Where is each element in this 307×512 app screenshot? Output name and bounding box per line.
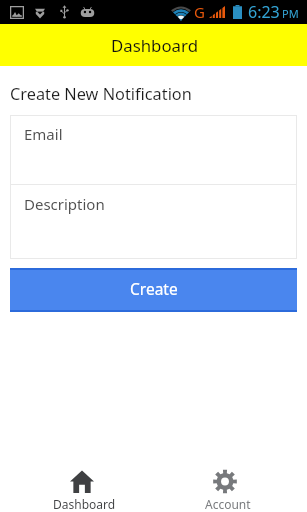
staticText: 6:23: [248, 1, 280, 23]
button[interactable]: Account: [156, 459, 300, 512]
button[interactable]: Dashboard: [13, 459, 156, 512]
button[interactable]: Description: [10, 185, 297, 259]
staticText: G: [194, 2, 205, 22]
staticText: Dashboard: [111, 34, 198, 57]
button[interactable]: Create: [10, 268, 297, 312]
staticText: Account: [205, 496, 251, 512]
staticText: PM: [282, 6, 299, 21]
staticText: Dashboard: [53, 496, 116, 512]
staticText: Create New Notification: [10, 83, 192, 105]
staticText: Email: [24, 124, 63, 144]
staticText: Description: [24, 194, 105, 214]
button[interactable]: Email: [10, 115, 297, 184]
staticText: Create: [130, 278, 178, 299]
